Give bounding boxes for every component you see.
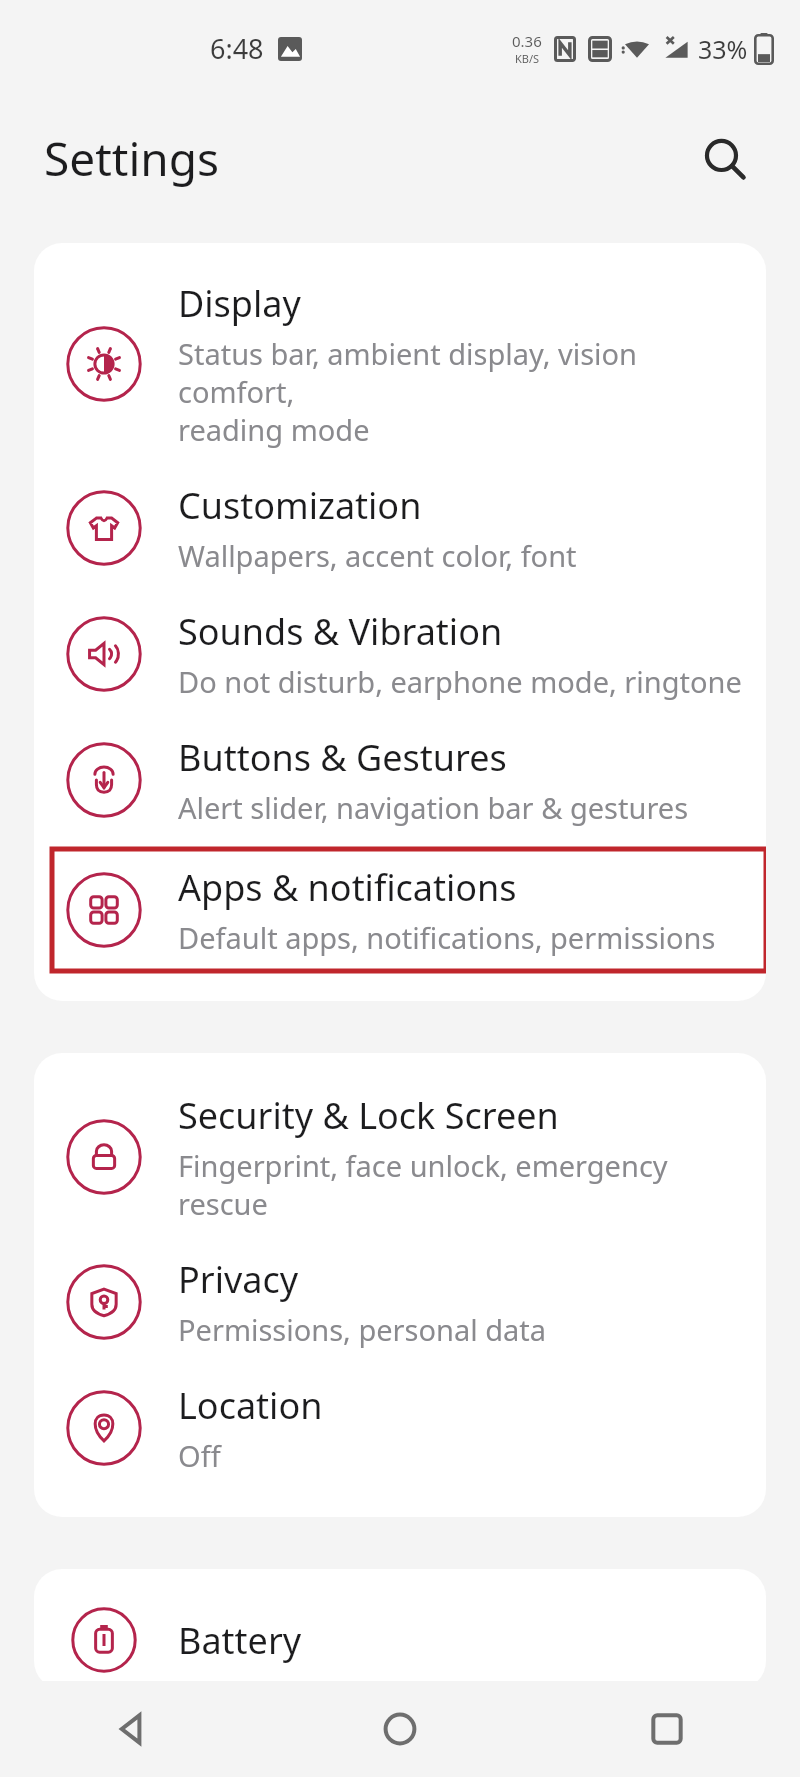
button[interactable]: Display xyxy=(34,263,766,465)
staticText: Apps & notifications xyxy=(178,863,517,912)
staticText: Off xyxy=(178,1436,221,1475)
staticText: 6:48 xyxy=(210,30,264,67)
staticText: Security & Lock Screen xyxy=(178,1091,559,1140)
button[interactable]: Back xyxy=(0,1681,266,1777)
staticText: Sounds & Vibration xyxy=(178,607,503,656)
staticText: Battery xyxy=(178,1616,302,1665)
staticText: KB/S xyxy=(515,51,540,66)
button[interactable]: Apps & notifications xyxy=(52,849,766,971)
button[interactable]: Customization xyxy=(34,465,766,591)
staticText: Location xyxy=(178,1381,323,1430)
button[interactable]: Sounds & Vibration xyxy=(34,591,766,717)
staticText: Buttons & Gestures xyxy=(178,733,507,782)
button[interactable]: Search xyxy=(694,128,756,190)
button[interactable]: Buttons & Gestures xyxy=(34,717,766,843)
button[interactable]: Location xyxy=(34,1365,766,1491)
staticText: Alert slider, navigation bar & gestures xyxy=(178,788,689,827)
staticText: Display xyxy=(178,279,301,328)
staticText: Wallpapers, accent color, font xyxy=(178,536,577,575)
button[interactable]: Home xyxy=(266,1681,533,1777)
button[interactable]: Battery xyxy=(34,1591,766,1689)
staticText: Do not disturb, earphone mode, ringtone xyxy=(178,662,742,701)
button[interactable]: Recent apps xyxy=(533,1681,800,1777)
staticText: Fingerprint, face unlock, emergency resc… xyxy=(178,1146,742,1223)
button[interactable]: Security & Lock Screen xyxy=(34,1075,766,1239)
staticText: Permissions, personal data xyxy=(178,1310,547,1349)
staticText: 33% xyxy=(698,32,748,66)
staticText: Settings xyxy=(44,127,220,190)
staticText: 0.36 xyxy=(512,31,542,51)
staticText: Status bar, ambient display, vision comf… xyxy=(178,334,742,449)
staticText: Privacy xyxy=(178,1255,299,1304)
button[interactable]: Privacy xyxy=(34,1239,766,1365)
staticText: Customization xyxy=(178,481,422,530)
staticText: Default apps, notifications, permissions xyxy=(178,918,716,957)
